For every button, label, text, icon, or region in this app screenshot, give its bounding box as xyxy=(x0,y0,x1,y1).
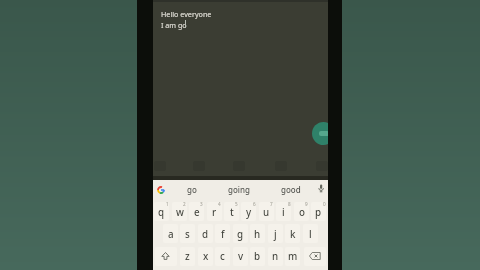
staticText: c xyxy=(220,250,225,263)
button[interactable] xyxy=(250,224,265,243)
staticText: j xyxy=(274,228,277,241)
staticText: i xyxy=(282,206,285,219)
staticText: o xyxy=(299,206,305,219)
button[interactable] xyxy=(294,202,309,221)
staticText: h xyxy=(254,228,261,241)
button[interactable] xyxy=(207,202,222,221)
staticText: l xyxy=(309,228,312,241)
button[interactable] xyxy=(250,247,265,266)
staticText: 2 xyxy=(183,201,186,207)
button[interactable] xyxy=(157,186,165,194)
button[interactable] xyxy=(172,202,187,221)
button[interactable] xyxy=(268,247,283,266)
button[interactable] xyxy=(311,202,326,221)
staticText: t xyxy=(230,206,234,219)
staticText: k xyxy=(290,228,296,241)
button[interactable] xyxy=(233,224,248,243)
staticText: 5 xyxy=(235,201,238,207)
staticText: go xyxy=(187,184,197,195)
button[interactable] xyxy=(276,202,291,221)
staticText: v xyxy=(238,250,244,263)
button[interactable]: going xyxy=(219,183,259,196)
staticText: x xyxy=(203,250,209,263)
staticText: g xyxy=(237,228,244,241)
staticText: 7 xyxy=(270,201,273,207)
button[interactable] xyxy=(198,224,213,243)
staticText: r xyxy=(212,206,217,219)
button[interactable] xyxy=(163,224,178,243)
staticText: w xyxy=(176,206,184,219)
button[interactable] xyxy=(268,224,283,243)
staticText: d xyxy=(202,228,209,241)
staticText: f xyxy=(221,228,225,241)
staticText: e xyxy=(194,206,200,219)
staticText: u xyxy=(263,206,270,219)
button[interactable] xyxy=(180,224,195,243)
button[interactable] xyxy=(224,202,239,221)
button[interactable] xyxy=(198,247,213,266)
button[interactable]: good xyxy=(273,183,309,196)
button[interactable] xyxy=(189,202,204,221)
button[interactable] xyxy=(285,224,300,243)
button[interactable] xyxy=(241,202,256,221)
staticText: Hello everyone xyxy=(161,9,212,19)
staticText: 9 xyxy=(305,201,308,207)
button[interactable] xyxy=(215,224,230,243)
staticText: b xyxy=(254,250,261,263)
staticText: n xyxy=(272,250,279,263)
button[interactable] xyxy=(312,122,328,145)
staticText: m xyxy=(288,250,298,263)
staticText: q xyxy=(158,206,165,219)
button[interactable] xyxy=(180,247,195,266)
button[interactable] xyxy=(317,184,325,193)
staticText: a xyxy=(168,228,174,241)
staticText: 8 xyxy=(288,201,291,207)
button[interactable] xyxy=(155,247,177,266)
staticText: I am go xyxy=(161,20,187,30)
staticText: 0 xyxy=(323,201,326,207)
staticText: 3 xyxy=(200,201,203,207)
button[interactable] xyxy=(259,202,274,221)
button[interactable] xyxy=(303,224,318,243)
button[interactable] xyxy=(215,247,230,266)
button[interactable] xyxy=(233,247,248,266)
button[interactable] xyxy=(285,247,300,266)
button[interactable]: go xyxy=(177,183,207,196)
button[interactable] xyxy=(304,247,326,266)
staticText: p xyxy=(315,206,322,219)
staticText: z xyxy=(185,250,190,263)
staticText: s xyxy=(185,228,190,241)
staticText: 1 xyxy=(166,201,169,207)
staticText: 6 xyxy=(253,201,256,207)
staticText: going xyxy=(228,184,250,195)
staticText: y xyxy=(246,206,252,219)
button[interactable] xyxy=(154,202,169,221)
staticText: good xyxy=(281,184,301,195)
staticText: 4 xyxy=(218,201,221,207)
